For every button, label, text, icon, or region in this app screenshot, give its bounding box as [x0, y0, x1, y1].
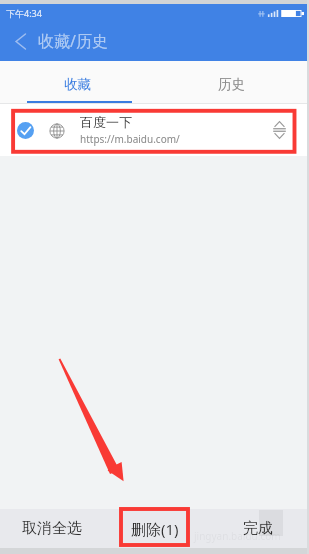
staticText: 收藏/历史 — [38, 30, 108, 52]
button[interactable]: 收藏 — [0, 61, 154, 104]
staticText: 删除(1) — [131, 519, 179, 539]
button[interactable]: Back — [0, 23, 38, 61]
staticText: 下午4:34 — [6, 7, 42, 19]
button[interactable]: Reorder — [262, 104, 296, 156]
button[interactable]: 删除(1) — [103, 509, 206, 548]
button[interactable]: 完成 — [206, 509, 309, 548]
staticText: 取消全选 — [22, 519, 82, 538]
staticText: 完成 — [243, 519, 273, 538]
staticText: 历史 — [218, 76, 245, 93]
button[interactable]: 取消全选 — [0, 509, 103, 548]
staticText: https://m.baidu.com/ — [80, 132, 180, 146]
button[interactable]: 历史 — [154, 61, 309, 104]
staticText: 收藏 — [64, 76, 91, 93]
staticText: jingyan.baidu.com — [194, 529, 281, 543]
button[interactable]: 百度一下 — [0, 104, 309, 156]
staticText: 百度一下 — [80, 114, 132, 130]
